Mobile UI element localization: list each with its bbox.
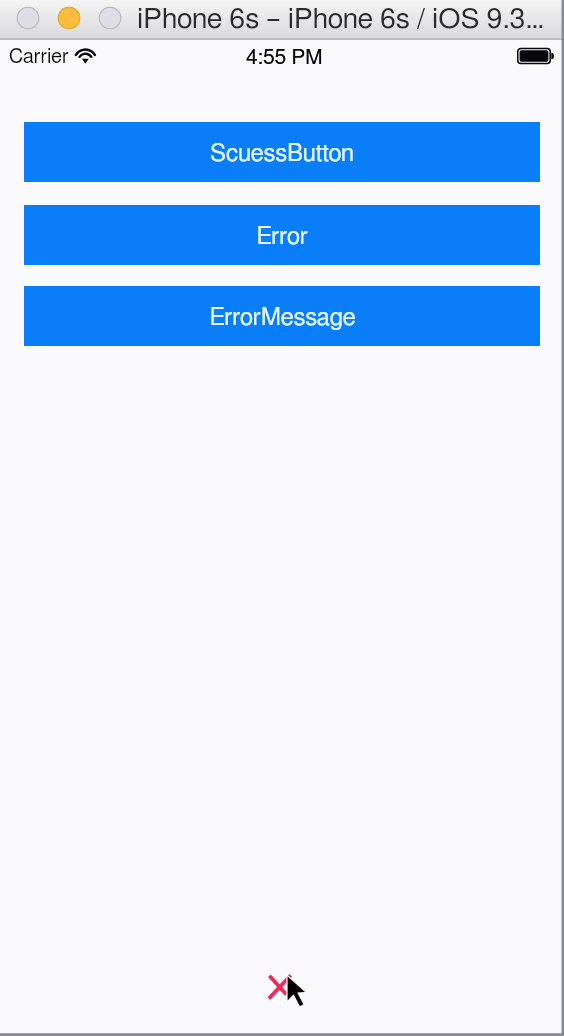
staticText: 4:55 PM	[246, 47, 323, 68]
staticText: ScuessButton	[210, 142, 354, 166]
button[interactable]: Close window	[16, 6, 40, 30]
button[interactable]: Error	[24, 205, 540, 265]
staticText: Carrier	[9, 47, 69, 67]
other: Wi-Fi signal	[75, 47, 99, 67]
other: Battery full	[517, 48, 555, 64]
button[interactable]: ScuessButton	[24, 122, 540, 182]
button[interactable]: ErrorMessage	[24, 286, 540, 346]
staticText: 4:55 PM	[246, 47, 323, 68]
staticText: ErrorMessage	[209, 306, 356, 330]
button[interactable]: Minimize window	[57, 6, 81, 30]
staticText: Error	[256, 225, 308, 249]
staticText: iPhone 6s – iPhone 6s / iOS 9.3…	[137, 5, 545, 34]
button[interactable]: Zoom window	[98, 6, 122, 30]
